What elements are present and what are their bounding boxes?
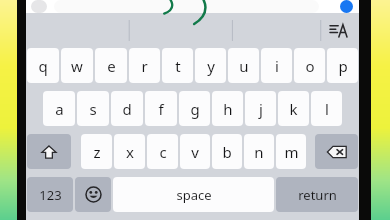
staticText: e [107,56,116,76]
staticText: k [289,99,298,119]
staticText: b [222,142,232,162]
staticText: t [175,56,181,76]
button[interactable]: Backspace [315,134,358,169]
button[interactable]: a [43,91,75,126]
button[interactable]: k [278,91,309,126]
staticText: q [38,56,48,76]
staticText: j [259,99,263,119]
button[interactable]: m [276,134,306,169]
staticText: y [207,56,215,76]
button[interactable]: b [212,134,242,169]
button[interactable]: l [311,91,342,126]
staticText: return [298,186,337,204]
staticText: c [159,142,167,162]
staticText: r [141,56,148,76]
staticText: n [254,142,264,162]
staticText: u [239,56,249,76]
button[interactable]: Emoji [75,177,111,212]
staticText: space [176,186,212,204]
button[interactable]: y [195,48,226,83]
button[interactable]: 123 [27,177,73,212]
button[interactable]: n [244,134,274,169]
button[interactable] [26,13,359,48]
button[interactable]: v [180,134,210,169]
button[interactable]: g [179,91,210,126]
button[interactable]: r [129,48,160,83]
staticText: w [71,56,83,76]
button[interactable]: d [111,91,143,126]
button[interactable]: h [212,91,243,126]
staticText: h [223,99,233,119]
button[interactable]: f [145,91,177,126]
button[interactable]: p [327,48,358,83]
button[interactable]: j [245,91,276,126]
button[interactable]: Shift [27,134,71,169]
button[interactable]: return [276,177,358,212]
staticText: i [275,56,279,76]
staticText: m [284,142,299,162]
button[interactable]: space [113,177,274,212]
button[interactable]: o [294,48,325,83]
staticText: v [191,142,199,162]
button[interactable]: t [162,48,193,83]
button[interactable]: i [261,48,292,83]
button[interactable]: s [77,91,109,126]
staticText: x [126,142,134,162]
staticText: o [305,56,315,76]
button[interactable]: e [95,48,127,83]
button[interactable]: c [147,134,178,169]
button[interactable]: Send [340,0,353,13]
button[interactable]: q [27,48,59,83]
staticText: 123 [39,186,62,204]
staticText: d [122,99,132,119]
staticText: f [158,99,164,119]
button[interactable]: u [228,48,259,83]
staticText: a [55,99,64,119]
staticText: g [190,99,200,119]
staticText: s [89,99,97,119]
staticText: l [325,99,329,119]
button[interactable]: w [61,48,93,83]
button[interactable]: z [81,134,112,169]
button[interactable]: x [114,134,145,169]
staticText: z [93,142,101,162]
staticText: p [338,56,348,76]
